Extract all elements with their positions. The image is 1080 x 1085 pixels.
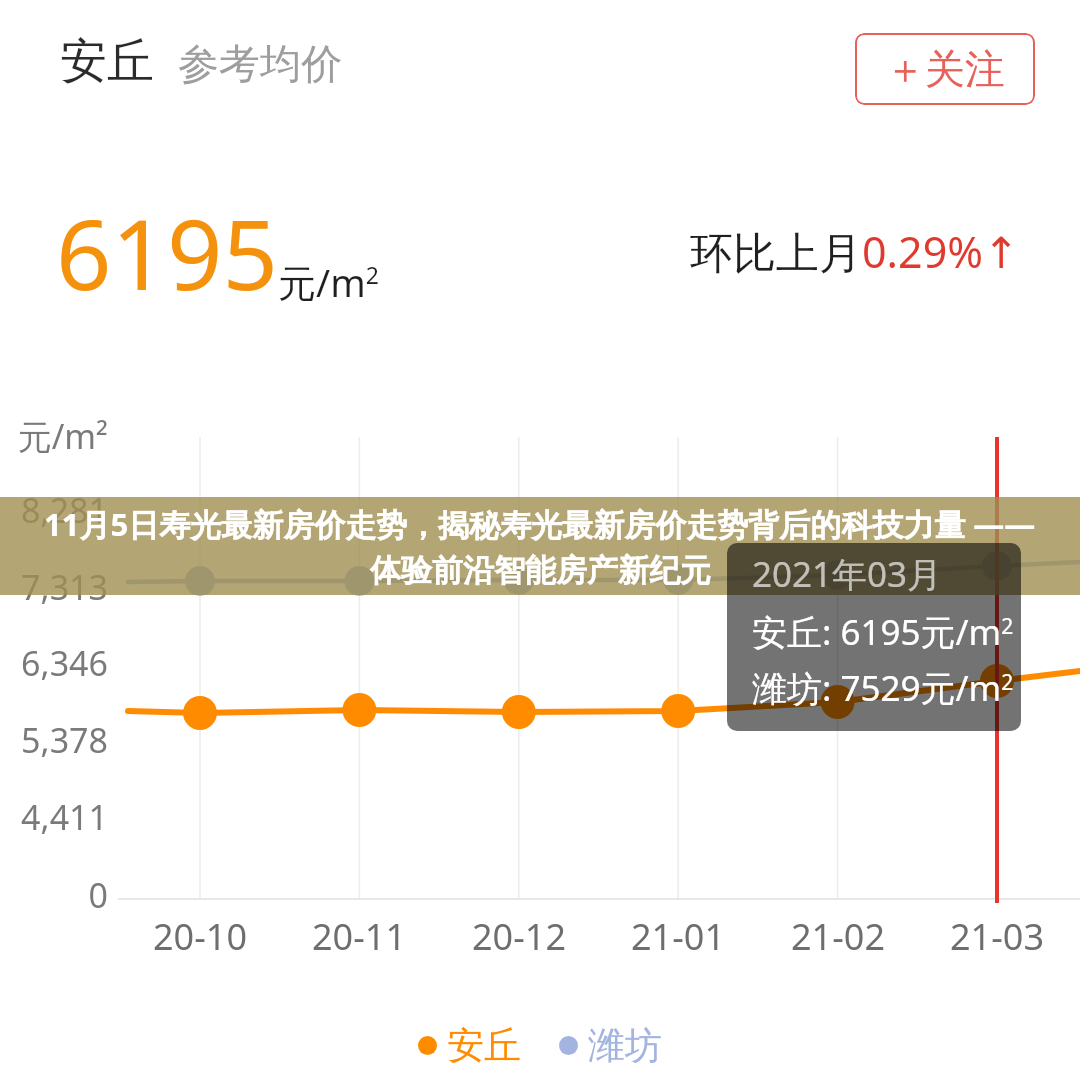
staticText: 5,378 [0,717,108,763]
button[interactable]: ＋关注 [855,33,1035,105]
button[interactable]: 潍坊 [555,1018,666,1073]
staticText: 安丘 [60,32,154,91]
staticText: 体验前沿智能房产新纪元 [370,551,711,590]
staticText: 11月5日寿光最新房价走势，揭秘寿光最新房价走势背后的科技力量 —— [44,503,1036,545]
staticText: 安丘: 6195元/m2 [752,608,1014,656]
staticText: 21-01 [598,912,758,961]
staticText: 元/m² [0,413,108,459]
staticText: 潍坊 [588,1022,662,1069]
staticText: ＋关注 [885,44,1005,94]
staticText: 2021年03月 [752,550,943,598]
staticText: 20-12 [439,912,599,961]
staticText: 6195 [56,186,278,318]
staticText: 0 [0,872,108,918]
staticText: 21-02 [758,912,918,961]
staticText: 参考均价 [178,39,342,91]
button[interactable]: 安丘 [414,1018,525,1073]
staticText: 8,281 [0,487,108,533]
staticText: 元/m2 [278,256,379,308]
staticText: 21-03 [917,912,1077,961]
staticText: 4,411 [0,794,108,840]
staticText: 安丘 [447,1022,521,1069]
staticText: 潍坊: 7529元/m2 [752,664,1014,712]
staticText: 6,346 [0,640,108,686]
staticText: 20-10 [120,912,280,961]
staticText: 环比上月0.29%↑ [690,222,1020,281]
staticText: 20-11 [279,912,439,961]
staticText: 7,313 [0,564,108,610]
